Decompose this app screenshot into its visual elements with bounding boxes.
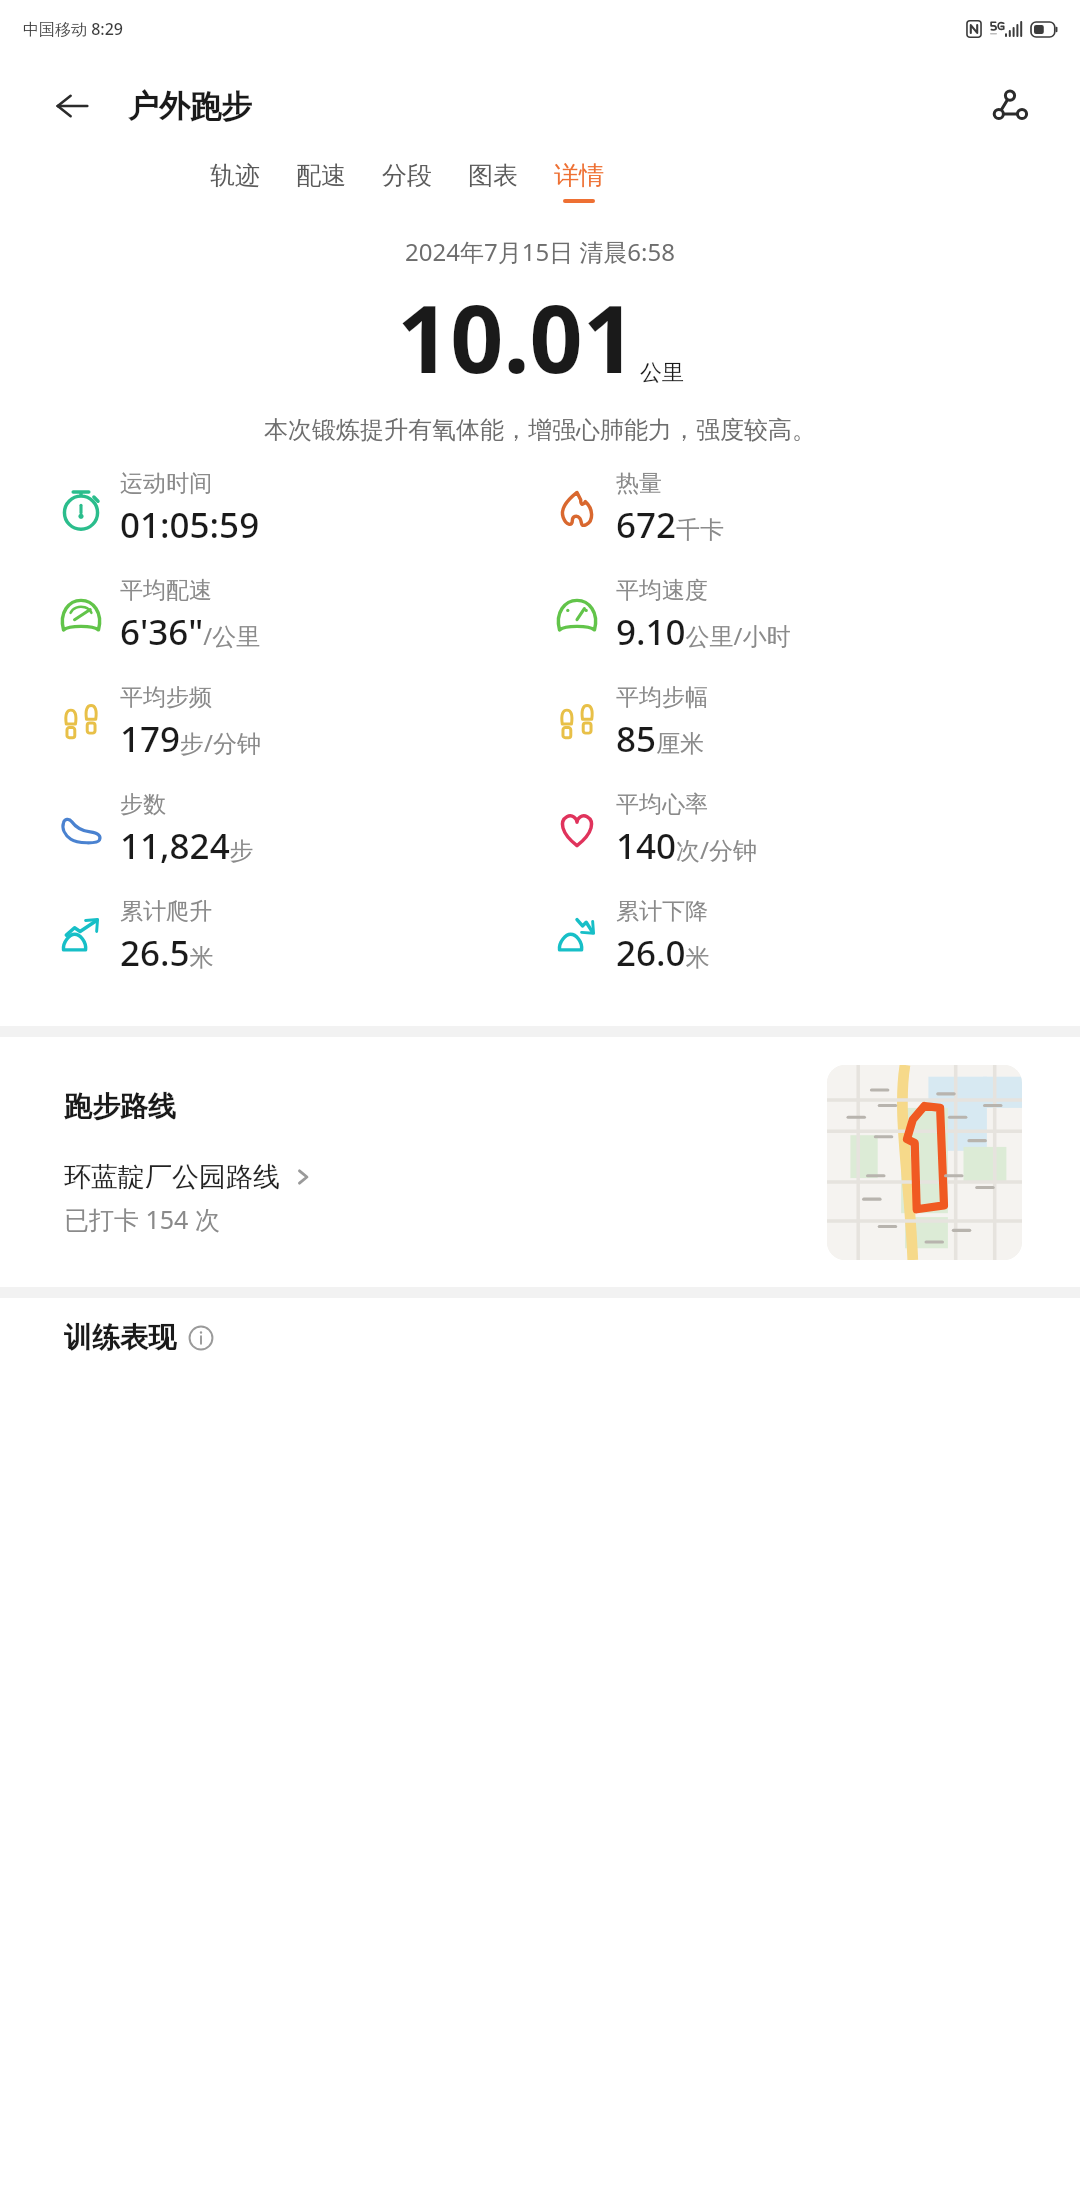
- staticText: 配速: [296, 160, 346, 191]
- staticText: 累计下降: [616, 897, 708, 926]
- staticText: 已打卡 154 次: [64, 1202, 220, 1236]
- button[interactable]: 运动时间: [58, 469, 540, 549]
- staticText: 26.0米: [616, 929, 710, 977]
- button[interactable]: 分段: [382, 154, 432, 209]
- staticText: 热量: [616, 469, 662, 498]
- staticText: 运动时间: [120, 469, 212, 498]
- button[interactable]: 轨迹: [210, 154, 260, 209]
- staticText: 图表: [468, 160, 518, 191]
- staticText: 平均步幅: [616, 683, 708, 712]
- staticText: 公里: [640, 359, 684, 387]
- staticText: 6'36"/公里: [120, 608, 261, 656]
- button[interactable]: 步数: [58, 790, 540, 870]
- button[interactable]: 平均心率: [554, 790, 1080, 870]
- button[interactable]: 平均配速: [58, 576, 540, 656]
- staticText: 179步/分钟: [120, 715, 261, 763]
- button[interactable]: 配速: [296, 154, 346, 209]
- staticText: 2024年7月15日 清晨6:58: [0, 235, 1080, 268]
- staticText: 10.01: [397, 274, 636, 401]
- staticText: 672千卡: [616, 501, 725, 549]
- staticText: 01:05:59: [120, 501, 260, 549]
- staticText: 户外跑步: [128, 87, 252, 126]
- button[interactable]: Back: [46, 80, 98, 132]
- button[interactable]: 平均速度: [554, 576, 1080, 656]
- staticText: 9.10公里/小时: [616, 608, 791, 656]
- staticText: 轨迹: [210, 160, 260, 191]
- staticText: 跑步路线: [64, 1089, 176, 1124]
- staticText: 平均步频: [120, 683, 212, 712]
- staticText: 平均配速: [120, 576, 212, 605]
- staticText: 140次/分钟: [616, 822, 757, 870]
- staticText: 平均心率: [616, 790, 708, 819]
- button[interactable]: 平均步频: [58, 683, 540, 763]
- staticText: 11,824步: [120, 822, 254, 870]
- button[interactable]: 图表: [468, 154, 518, 209]
- staticText: 平均速度: [616, 576, 708, 605]
- button[interactable]: 跑步路线: [0, 1037, 1080, 1287]
- button[interactable]: 训练表现: [64, 1320, 1080, 1355]
- staticText: 85厘米: [616, 715, 705, 763]
- staticText: 步数: [120, 790, 166, 819]
- button[interactable]: 热量: [554, 469, 1080, 549]
- staticText: 训练表现: [64, 1320, 176, 1355]
- staticText: 分段: [382, 160, 432, 191]
- staticText: 详情: [554, 160, 604, 191]
- staticText: 26.5米: [120, 929, 214, 977]
- staticText: 环蓝靛厂公园路线: [64, 1160, 280, 1194]
- button[interactable]: 详情: [554, 154, 604, 209]
- button[interactable]: 累计爬升: [58, 897, 540, 977]
- button[interactable]: 累计下降: [554, 897, 1080, 977]
- button[interactable]: Share: [982, 78, 1038, 134]
- staticText: 中国移动 8:29: [23, 18, 123, 40]
- staticText: 本次锻炼提升有氧体能，增强心肺能力，强度较高。: [0, 415, 1080, 445]
- staticText: 累计爬升: [120, 897, 212, 926]
- button[interactable]: 平均步幅: [554, 683, 1080, 763]
